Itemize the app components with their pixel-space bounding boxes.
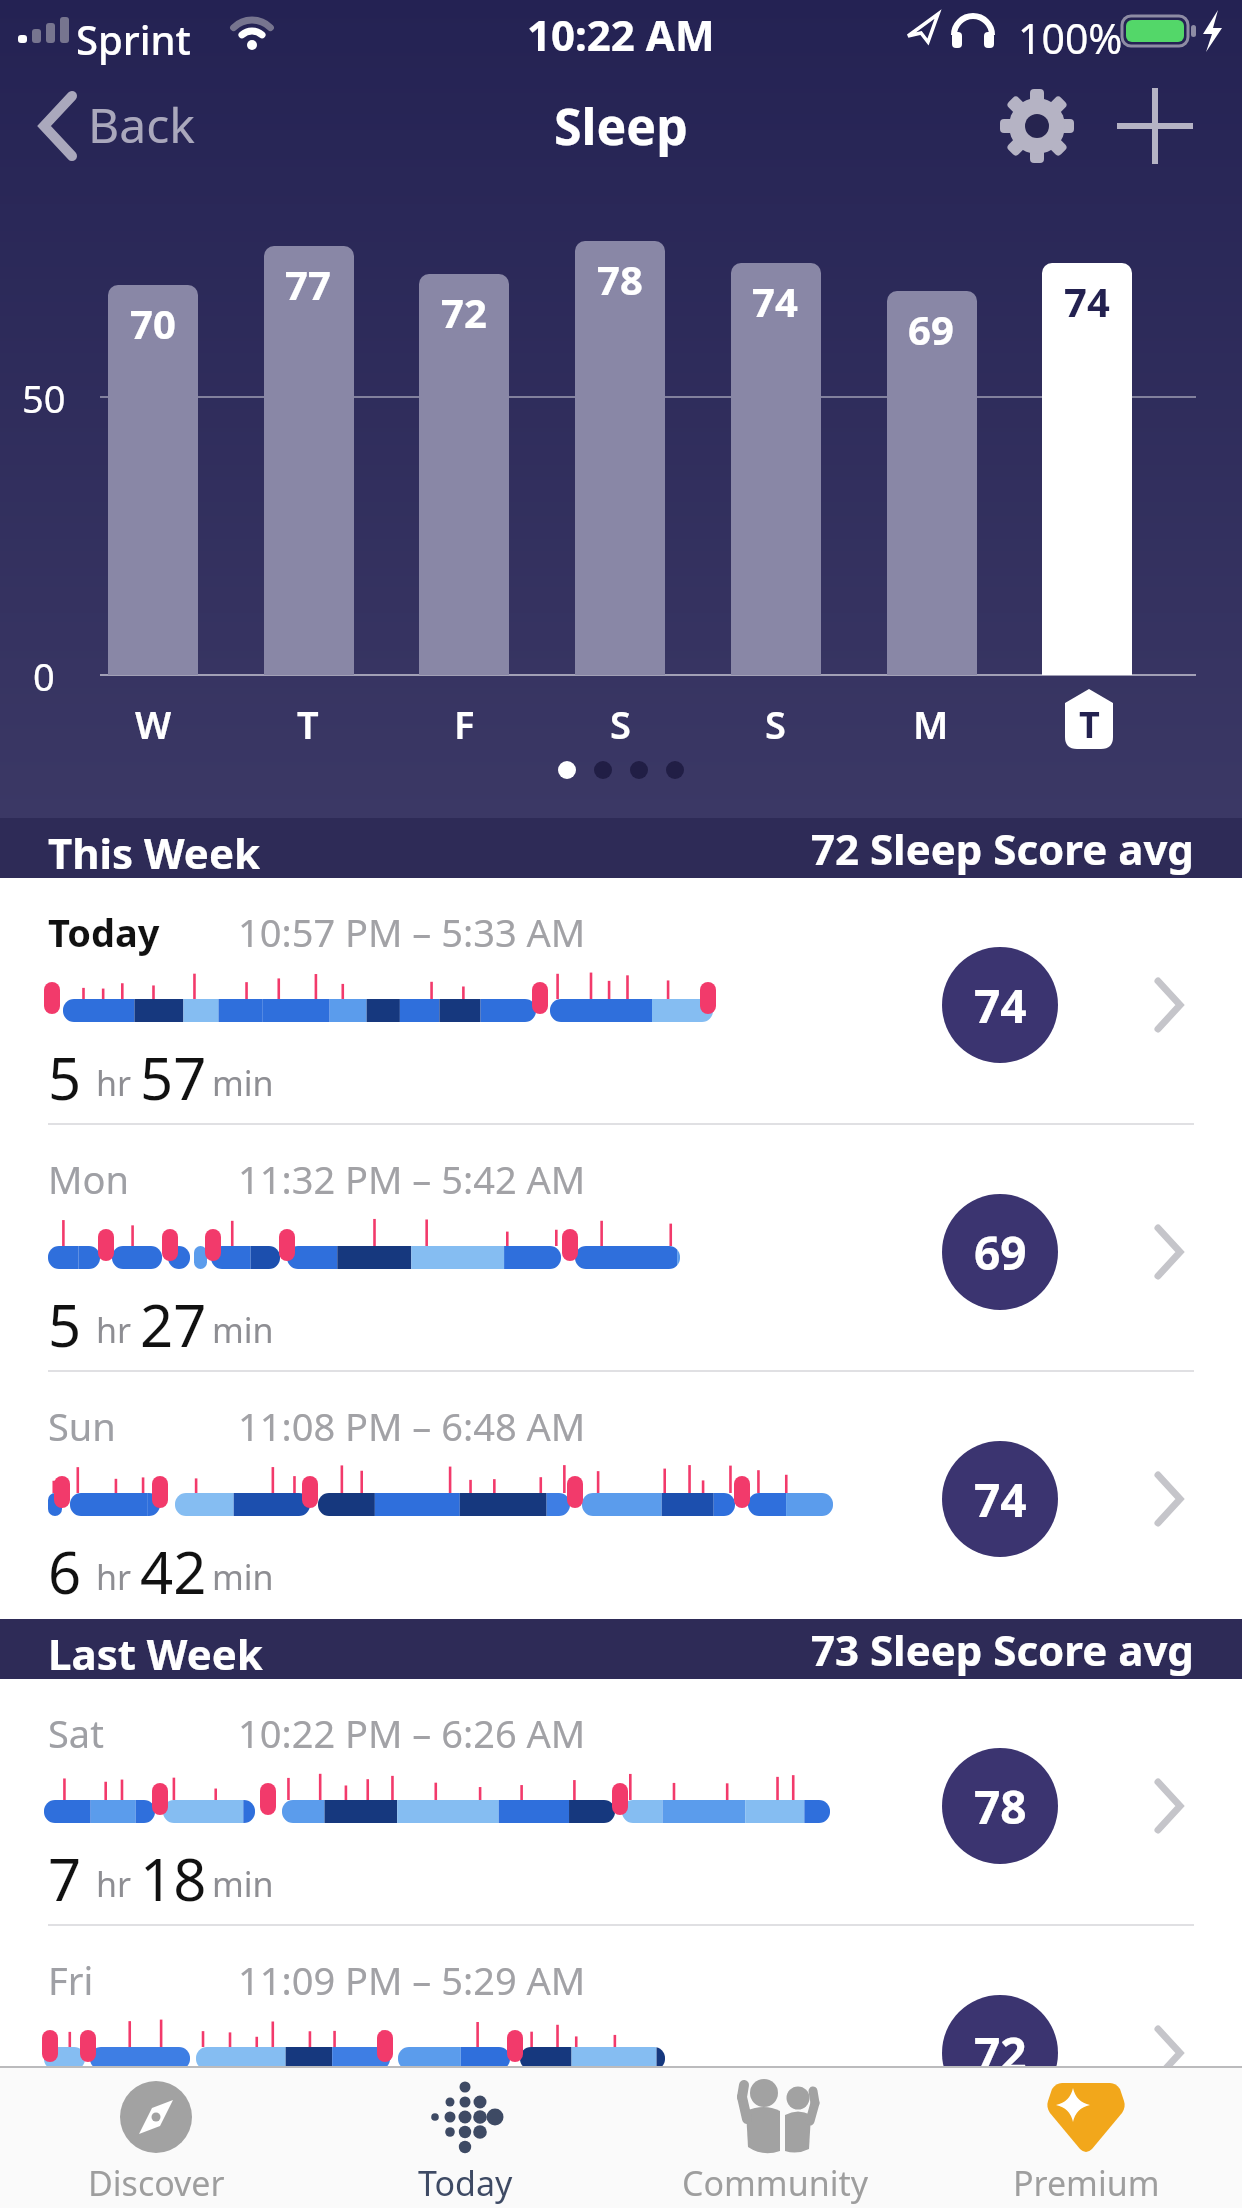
staticText: This Week bbox=[48, 824, 261, 881]
staticText: 5 bbox=[48, 1038, 82, 1117]
staticText: Sprint bbox=[76, 12, 191, 66]
staticText: 100% bbox=[1018, 10, 1123, 66]
staticText: 72 bbox=[441, 285, 487, 339]
button[interactable]: Sat bbox=[0, 1679, 1242, 1926]
staticText: S bbox=[610, 698, 631, 750]
staticText: 77 bbox=[285, 257, 331, 311]
staticText: 72 bbox=[974, 2022, 1027, 2085]
staticText: S bbox=[765, 698, 786, 750]
staticText: Today bbox=[48, 906, 160, 958]
staticText: 42 bbox=[140, 1532, 207, 1611]
staticText: min bbox=[212, 1060, 274, 1106]
staticText: 10:22 AM bbox=[527, 6, 715, 56]
button[interactable]: Back bbox=[30, 90, 220, 160]
staticText: 10:22 PM – 6:26 AM bbox=[238, 1707, 586, 1759]
button[interactable]: Today bbox=[365, 2066, 565, 2208]
staticText: Last Week bbox=[48, 1625, 263, 1682]
staticText: hr bbox=[96, 2108, 132, 2154]
staticText: 11:32 PM – 5:42 AM bbox=[238, 1153, 586, 1205]
staticText: 7 bbox=[48, 1839, 82, 1918]
staticText: F bbox=[454, 698, 475, 750]
button[interactable]: Today bbox=[0, 878, 1242, 1125]
staticText: hr bbox=[96, 1861, 132, 1907]
button[interactable] bbox=[1113, 84, 1197, 168]
button[interactable]: Premium bbox=[986, 2066, 1186, 2208]
staticText: 20 bbox=[140, 2086, 207, 2165]
staticText: 74 bbox=[752, 274, 798, 328]
staticText: 27 bbox=[140, 1285, 207, 1364]
staticText: min bbox=[212, 1307, 274, 1353]
staticText: T bbox=[1079, 700, 1100, 749]
staticText: hr bbox=[96, 1307, 132, 1353]
staticText: Discover bbox=[88, 2160, 225, 2206]
staticText: Community bbox=[682, 2160, 869, 2206]
staticText: 6 bbox=[48, 1532, 82, 1611]
staticText: 78 bbox=[597, 252, 643, 306]
staticText: 57 bbox=[140, 1038, 207, 1117]
staticText: Premium bbox=[1013, 2160, 1160, 2206]
staticText: W bbox=[135, 698, 172, 750]
staticText: Sleep bbox=[554, 92, 688, 160]
staticText: 18 bbox=[140, 1839, 207, 1918]
staticText: 11:09 PM – 5:29 AM bbox=[238, 1954, 586, 2006]
staticText: 74 bbox=[974, 1468, 1027, 1531]
staticText: 69 bbox=[908, 302, 954, 356]
staticText: 69 bbox=[974, 1221, 1027, 1284]
staticText: 0 bbox=[33, 650, 55, 700]
button[interactable]: Discover bbox=[56, 2066, 256, 2208]
button[interactable]: Community bbox=[675, 2066, 875, 2208]
button[interactable] bbox=[995, 84, 1079, 168]
staticText: Sat bbox=[48, 1707, 104, 1759]
staticText: M bbox=[913, 698, 949, 750]
staticText: T bbox=[297, 698, 319, 750]
staticText: Back bbox=[88, 92, 195, 157]
button[interactable]: Sun bbox=[0, 1372, 1242, 1619]
staticText: Sun bbox=[48, 1400, 116, 1452]
staticText: 78 bbox=[974, 1775, 1027, 1838]
staticText: 70 bbox=[130, 296, 176, 350]
staticText: 73 Sleep Score avg bbox=[811, 1621, 1194, 1678]
staticText: Mon bbox=[48, 1153, 129, 1205]
button[interactable]: Fri bbox=[0, 1926, 1242, 2173]
staticText: hr bbox=[96, 1060, 132, 1106]
button[interactable]: Mon bbox=[0, 1125, 1242, 1372]
staticText: 74 bbox=[1064, 274, 1110, 328]
staticText: hr bbox=[96, 1554, 132, 1600]
staticText: 5 bbox=[48, 1285, 82, 1364]
staticText: 11:08 PM – 6:48 AM bbox=[238, 1400, 586, 1452]
staticText: min bbox=[212, 1554, 274, 1600]
staticText: min bbox=[212, 1861, 274, 1907]
staticText: Fri bbox=[48, 1954, 94, 2006]
staticText: 50 bbox=[22, 372, 66, 422]
staticText: 72 Sleep Score avg bbox=[811, 820, 1194, 877]
staticText: Today bbox=[418, 2160, 513, 2206]
staticText: 10:57 PM – 5:33 AM bbox=[238, 906, 586, 958]
staticText: 74 bbox=[974, 974, 1027, 1037]
